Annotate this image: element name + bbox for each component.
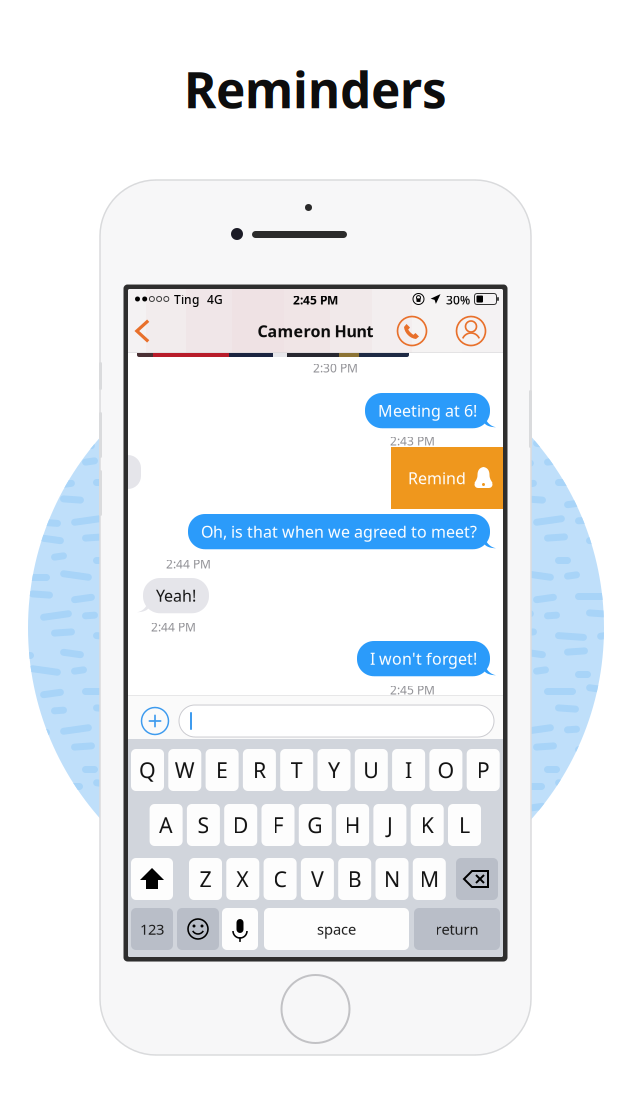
staticText: Remind xyxy=(408,467,466,489)
staticText: return xyxy=(435,919,478,939)
staticText: Meeting at 6! xyxy=(378,400,477,421)
button[interactable]: Delete xyxy=(456,858,498,900)
staticText: Q xyxy=(139,756,156,784)
staticText: H xyxy=(345,811,361,839)
staticText: F xyxy=(272,811,283,839)
button[interactable]: E xyxy=(206,749,239,791)
staticText: 123 xyxy=(140,919,164,939)
button[interactable]: P xyxy=(467,749,500,791)
staticText: 30% xyxy=(446,292,470,308)
button[interactable]: X xyxy=(226,858,259,900)
staticText: N xyxy=(384,865,400,893)
staticText: Ting xyxy=(174,291,199,307)
staticText: L xyxy=(459,811,470,839)
staticText: Cameron Hunt xyxy=(257,320,373,342)
button[interactable]: Z xyxy=(189,858,222,900)
button[interactable]: O xyxy=(429,749,462,791)
staticText: A xyxy=(159,811,173,839)
staticText: E xyxy=(216,756,228,784)
staticText: 2:43 PM xyxy=(390,433,435,449)
button[interactable]: G xyxy=(299,804,332,846)
button[interactable]: space xyxy=(264,908,409,950)
staticText: 2:45 PM xyxy=(293,292,338,308)
button[interactable]: L xyxy=(448,804,481,846)
staticText: V xyxy=(311,865,324,893)
button[interactable]: 123 xyxy=(131,908,173,950)
button[interactable]: H xyxy=(336,804,369,846)
staticText: T xyxy=(291,756,303,784)
staticText: X xyxy=(236,865,249,893)
button[interactable]: A xyxy=(150,804,183,846)
staticText: 2:30 PM xyxy=(313,360,358,376)
staticText: O xyxy=(437,756,454,784)
staticText: S xyxy=(197,811,209,839)
button[interactable]: N xyxy=(375,858,408,900)
button[interactable]: W xyxy=(168,749,201,791)
staticText: U xyxy=(363,756,379,784)
button[interactable]: Add attachment xyxy=(141,707,169,735)
staticText: G xyxy=(307,811,323,839)
button[interactable]: V xyxy=(301,858,334,900)
button[interactable]: T xyxy=(280,749,313,791)
staticText: P xyxy=(477,756,490,784)
staticText: M xyxy=(420,865,439,893)
button[interactable]: S xyxy=(187,804,220,846)
staticText: R xyxy=(253,756,266,784)
button[interactable]: M xyxy=(413,858,446,900)
button[interactable]: U xyxy=(355,749,388,791)
button[interactable]: Contact info xyxy=(456,316,486,346)
staticText: W xyxy=(175,756,195,784)
staticText: I won't forget! xyxy=(370,648,477,669)
button[interactable]: R xyxy=(243,749,276,791)
button[interactable]: Back xyxy=(133,317,155,345)
button[interactable]: K xyxy=(411,804,444,846)
staticText: Oh, is that when we agreed to meet? xyxy=(201,521,477,542)
staticText: Yeah! xyxy=(156,585,196,606)
staticText: 2:44 PM xyxy=(151,619,196,635)
button[interactable]: Q xyxy=(131,749,164,791)
staticText: Reminders xyxy=(184,56,447,122)
staticText: Z xyxy=(199,865,211,893)
button[interactable]: Y xyxy=(317,749,350,791)
button[interactable]: Call xyxy=(397,316,427,346)
staticText: I xyxy=(405,756,412,784)
button[interactable]: I xyxy=(392,749,425,791)
button[interactable]: return xyxy=(414,908,500,950)
staticText: Y xyxy=(328,756,340,784)
button[interactable]: C xyxy=(264,858,297,900)
staticText: 2:45 PM xyxy=(390,682,435,698)
button[interactable]: D xyxy=(224,804,257,846)
staticText: J xyxy=(387,811,393,839)
staticText: B xyxy=(348,865,362,893)
button[interactable]: B xyxy=(338,858,371,900)
staticText: 4G xyxy=(207,291,223,307)
staticText: D xyxy=(233,811,249,839)
staticText: 2:44 PM xyxy=(166,556,211,572)
button[interactable]: Dictate xyxy=(222,908,258,950)
button[interactable]: Shift xyxy=(131,858,173,900)
button[interactable]: Emoji xyxy=(177,908,219,950)
staticText: K xyxy=(421,811,434,839)
staticText: space xyxy=(317,919,356,939)
staticText: C xyxy=(274,865,287,893)
button[interactable]: J xyxy=(373,804,406,846)
button[interactable]: F xyxy=(261,804,294,846)
